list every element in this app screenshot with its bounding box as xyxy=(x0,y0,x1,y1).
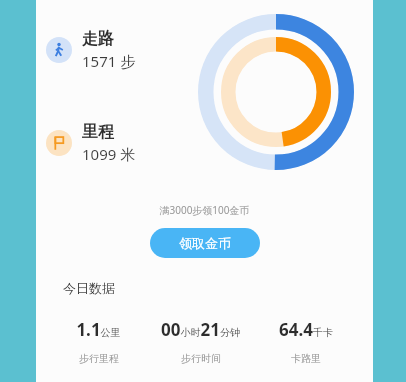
staticText: 1099 米 xyxy=(82,144,136,164)
staticText: 里程 xyxy=(82,122,114,142)
staticText: 1.1公里 xyxy=(76,318,121,341)
button[interactable]: 64.4千卡 xyxy=(279,318,333,365)
staticText: 步行里程 xyxy=(79,352,119,365)
button[interactable]: 领取金币 xyxy=(150,228,260,258)
staticText: 领取金币 xyxy=(179,235,231,251)
staticText: 走路 xyxy=(82,29,114,49)
button[interactable]: 00小时21分钟 xyxy=(161,318,240,365)
button[interactable]: Walking xyxy=(46,27,136,73)
other: Distance xyxy=(46,130,72,156)
staticText: 64.4千卡 xyxy=(279,318,333,341)
other: Walking xyxy=(46,37,72,63)
staticText: 步行时间 xyxy=(181,352,221,365)
staticText: 卡路里 xyxy=(291,352,321,365)
button[interactable]: 1.1公里 xyxy=(76,318,121,365)
button[interactable]: Distance xyxy=(46,120,136,166)
staticText: 满3000步领100金币 xyxy=(159,203,250,217)
staticText: 1571 步 xyxy=(82,51,136,71)
staticText: 00小时21分钟 xyxy=(161,318,240,341)
staticText: 今日数据 xyxy=(63,280,115,296)
